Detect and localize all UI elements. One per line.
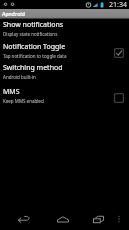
button[interactable]: Show notifications xyxy=(0,18,129,40)
button[interactable]: MMS xyxy=(0,85,129,107)
staticText: 21:34 xyxy=(109,0,127,9)
staticText: Display state notifications xyxy=(3,31,58,37)
staticText: Tap notification to toggle data xyxy=(3,53,67,59)
staticText: Notification Toggle xyxy=(3,42,66,52)
staticText: MMS xyxy=(3,87,20,97)
button[interactable]: Home xyxy=(44,208,82,230)
button[interactable]: Back xyxy=(5,208,43,230)
button[interactable]: Recent apps xyxy=(80,208,116,230)
button[interactable]: Notification Toggle xyxy=(0,40,129,61)
button[interactable]: More options xyxy=(112,208,125,230)
staticText: Android built-in xyxy=(3,74,36,80)
staticText: Apndroid xyxy=(2,11,25,18)
staticText: Switching method xyxy=(3,63,63,73)
staticText: Show notifications xyxy=(3,20,64,30)
button[interactable]: Switching method xyxy=(0,61,129,85)
staticText: Keep MMS enabled xyxy=(3,98,44,104)
